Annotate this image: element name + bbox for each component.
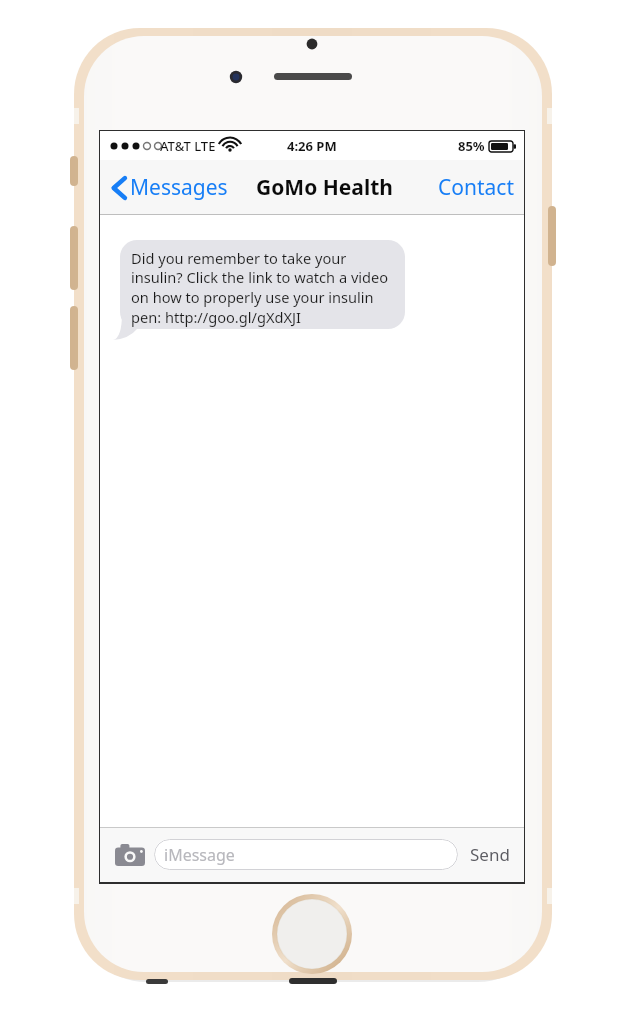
staticText: Contact: [438, 173, 514, 202]
button[interactable]: Contact: [434, 167, 518, 208]
staticText: 4:26 PM: [287, 137, 337, 155]
button[interactable]: Send: [468, 837, 512, 872]
staticText: Did you remember to take your insulin? C…: [131, 248, 399, 328]
staticText: 85%: [458, 137, 485, 155]
staticText: Send: [470, 843, 510, 866]
staticText: iMessage: [164, 844, 235, 866]
staticText: Messages: [130, 173, 228, 202]
button[interactable]: Camera: [112, 837, 148, 873]
button[interactable]: Messages: [108, 167, 232, 208]
button[interactable]: iMessage: [154, 839, 458, 870]
staticText: GoMo Health: [256, 173, 393, 202]
staticText: AT&T LTE: [160, 137, 216, 155]
